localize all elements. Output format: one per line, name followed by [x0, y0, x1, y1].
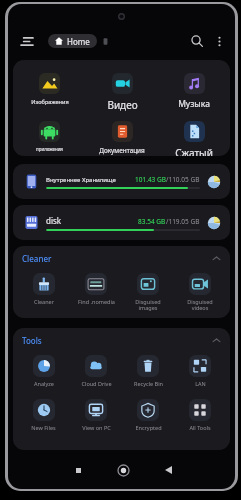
button[interactable]: Видео [86, 73, 158, 112]
staticText: Сжатый [175, 146, 213, 156]
staticText: Encrypted [135, 424, 162, 431]
button[interactable]: Home [114, 461, 132, 479]
button[interactable]: disk [13, 205, 230, 240]
staticText: приложения [36, 146, 63, 152]
button[interactable]: Изображения [13, 73, 86, 106]
staticText: /119.05 GB [166, 217, 200, 226]
button[interactable]: All Tools [174, 399, 226, 431]
button[interactable]: Recycle Bin [122, 355, 174, 387]
staticText: LAN [195, 380, 206, 387]
button[interactable]: Analyze [17, 355, 70, 387]
staticText: Tools [22, 335, 42, 346]
staticText: Analyze [34, 380, 54, 387]
staticText: Видео [107, 98, 138, 112]
button[interactable]: New Files [17, 399, 70, 431]
button[interactable]: LAN [174, 355, 226, 387]
staticText: Cloud Drive [81, 380, 112, 387]
button[interactable]: Disguised images [122, 273, 174, 312]
staticText: Изображения [31, 98, 69, 106]
staticText: 83.54 GB [138, 217, 166, 226]
button[interactable]: Back [159, 461, 177, 479]
button[interactable]: Encrypted [122, 399, 174, 431]
staticText: Recycle Bin [134, 380, 163, 387]
staticText: Музыка [178, 98, 210, 110]
button[interactable]: View on PC [70, 399, 122, 431]
button[interactable]: Cleaner [13, 253, 230, 264]
button[interactable]: Музыка [158, 73, 230, 110]
button[interactable]: Menu [16, 30, 38, 52]
staticText: Внутреннее Хранилище [46, 176, 116, 184]
button[interactable]: Search [186, 30, 208, 52]
staticText: View on PC [82, 424, 111, 431]
staticText: Документация [99, 146, 145, 155]
button[interactable]: Recents [69, 461, 87, 479]
staticText: Cleaner [22, 253, 52, 264]
staticText: disk [46, 215, 62, 226]
staticText: 101.43 GB [135, 175, 166, 184]
button[interactable]: Home [48, 34, 97, 48]
button[interactable]: Cleaner [17, 273, 70, 305]
staticText: Disguised videos [187, 298, 213, 312]
button[interactable]: Find .nomedia [70, 273, 122, 305]
staticText: Find .nomedia [78, 298, 115, 305]
button[interactable]: Сжатый [158, 121, 230, 156]
staticText: Disguised images [135, 298, 161, 312]
button[interactable]: Документация [86, 121, 158, 155]
staticText: New Files [31, 424, 56, 431]
button[interactable]: Disguised videos [174, 273, 226, 312]
staticText: Home [67, 36, 90, 47]
button[interactable]: Cloud Drive [70, 355, 122, 387]
button[interactable]: Tools [13, 335, 230, 346]
staticText: All Tools [189, 424, 211, 431]
button[interactable]: Внутреннее Хранилище [13, 164, 230, 199]
staticText: /110.05 GB [166, 175, 200, 184]
staticText: Cleaner [34, 298, 54, 305]
button[interactable]: приложения [13, 121, 86, 152]
button[interactable]: More options [209, 31, 229, 51]
